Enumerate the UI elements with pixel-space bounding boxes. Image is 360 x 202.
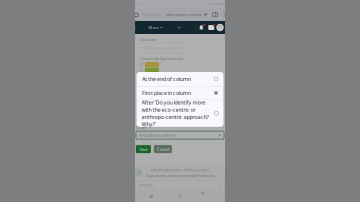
staticText: First place in column [142, 89, 191, 96]
button[interactable]: Home [171, 191, 188, 202]
staticText: ▸ [219, 133, 221, 137]
button[interactable]: First place in column [136, 131, 224, 139]
staticText: At the end of column [142, 75, 191, 83]
button[interactable]: Back [200, 191, 217, 202]
button[interactable]: ◂ Anthropo-centric and Eco-centric [137, 167, 223, 178]
button[interactable]: After 'Do you identify more [136, 100, 223, 127]
staticText: Choose background color [140, 56, 184, 61]
staticText: anthropo-centric approach? [141, 113, 208, 120]
staticText: Message [140, 37, 156, 42]
button[interactable]: First place in column [137, 86, 223, 99]
staticText: Not secure [142, 12, 161, 17]
staticText: Approaches to Environmental Protection [145, 173, 214, 178]
staticText: Why?' [141, 121, 155, 128]
button[interactable]: Notifications [196, 21, 206, 34]
staticText: with the eco-centric or [141, 106, 195, 113]
staticText: Order [136, 125, 147, 130]
button[interactable]: Home [134, 8, 139, 21]
staticText: After 'Do you identify more [141, 99, 205, 106]
staticText: First place in column [139, 132, 175, 138]
staticText: ▸ [220, 183, 221, 186]
button[interactable]: More [149, 21, 162, 34]
staticText: elearning.ec.moe.int [166, 12, 201, 17]
staticText: Save [139, 146, 147, 152]
button[interactable]: Jump to... [136, 181, 224, 189]
button[interactable]: More options [220, 8, 228, 21]
staticText: Jump to... [139, 182, 155, 188]
staticText: ◂ Anthropo-centric and Eco-centric [150, 167, 209, 172]
button[interactable]: At the end of column [137, 72, 223, 86]
button[interactable]: Recent apps [143, 191, 160, 202]
staticText: More [149, 25, 159, 30]
button[interactable]: Cancel [154, 145, 172, 153]
staticText: CP [218, 26, 222, 29]
button[interactable]: Tabs [210, 8, 220, 21]
button[interactable]: Expand menu [175, 21, 183, 34]
button[interactable]: Account menu [216, 21, 227, 34]
staticText: ≡ [137, 170, 140, 175]
button[interactable]: Save [136, 145, 151, 153]
button[interactable]: New tab [201, 8, 210, 21]
button[interactable]: Course index [134, 168, 143, 177]
button[interactable]: Messages [206, 21, 216, 34]
staticText: Cancel [157, 146, 169, 152]
staticText: Write your arguments [143, 45, 182, 51]
